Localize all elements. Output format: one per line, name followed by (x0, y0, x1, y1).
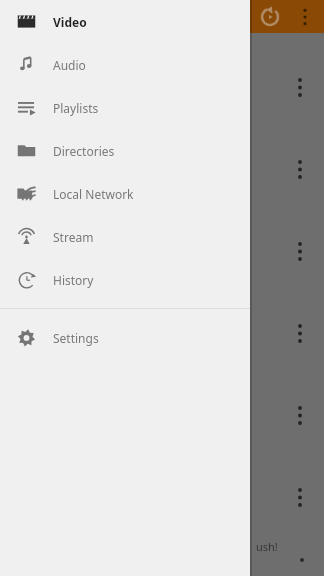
button[interactable]: Playlists (0, 86, 250, 129)
button[interactable]: Settings (0, 316, 250, 359)
button[interactable]: Refresh (256, 3, 284, 31)
staticText: ush! (256, 539, 278, 554)
button[interactable]: Directories (0, 129, 250, 172)
staticText: Playlists (53, 100, 99, 116)
staticText: Video (53, 14, 87, 30)
button[interactable]: Stream (0, 215, 250, 258)
staticText: Settings (53, 330, 99, 346)
button[interactable]: Local Network (0, 172, 250, 215)
staticText: Directories (53, 143, 115, 159)
staticText: Stream (53, 229, 94, 245)
button[interactable]: Audio (0, 43, 250, 86)
button[interactable]: Video (0, 0, 250, 43)
staticText: History (53, 272, 94, 288)
staticText: Local Network (53, 186, 134, 202)
button[interactable]: History (0, 258, 250, 301)
button[interactable]: More options (292, 4, 318, 30)
staticText: Audio (53, 57, 86, 73)
